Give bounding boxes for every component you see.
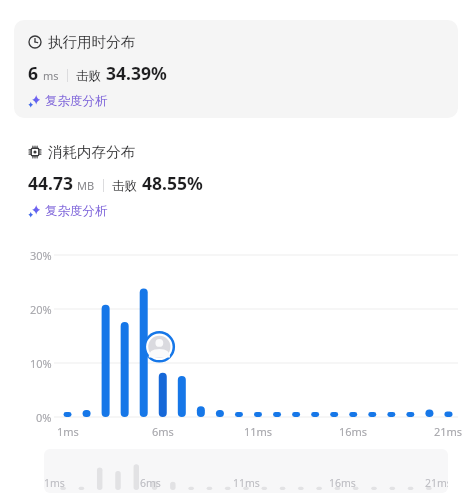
- staticText: 30%: [30, 248, 52, 263]
- staticText: ms: [43, 68, 59, 83]
- staticText: 21ms: [425, 476, 448, 490]
- staticText: 1ms: [44, 476, 65, 490]
- staticText: 执行用时分布: [48, 33, 135, 51]
- staticText: 击败: [112, 178, 137, 194]
- staticText: 21ms: [434, 424, 463, 439]
- staticText: 48.55%: [142, 171, 203, 195]
- button[interactable]: Chart range selector: [44, 449, 448, 493]
- staticText: 6ms: [140, 476, 161, 490]
- staticText: 11ms: [244, 424, 273, 439]
- staticText: 击败: [76, 68, 101, 84]
- staticText: 10%: [30, 356, 52, 371]
- staticText: 20%: [30, 302, 52, 317]
- staticText: 复杂度分析: [45, 93, 108, 109]
- button[interactable]: 复杂度分析: [28, 93, 108, 109]
- staticText: 消耗内存分布: [48, 143, 135, 161]
- staticText: MB: [77, 178, 95, 193]
- staticText: 16ms: [339, 424, 368, 439]
- staticText: 1ms: [57, 424, 79, 439]
- staticText: 11ms: [233, 476, 260, 490]
- button[interactable]: 复杂度分析: [28, 203, 108, 219]
- staticText: 6: [28, 61, 39, 85]
- button[interactable]: 执行用时分布: [14, 20, 458, 118]
- staticText: 复杂度分析: [45, 203, 108, 219]
- staticText: 44.73: [28, 171, 73, 195]
- staticText: 0%: [36, 410, 52, 425]
- staticText: 6ms: [152, 424, 174, 439]
- staticText: 16ms: [329, 476, 356, 490]
- staticText: 34.39%: [106, 61, 167, 85]
